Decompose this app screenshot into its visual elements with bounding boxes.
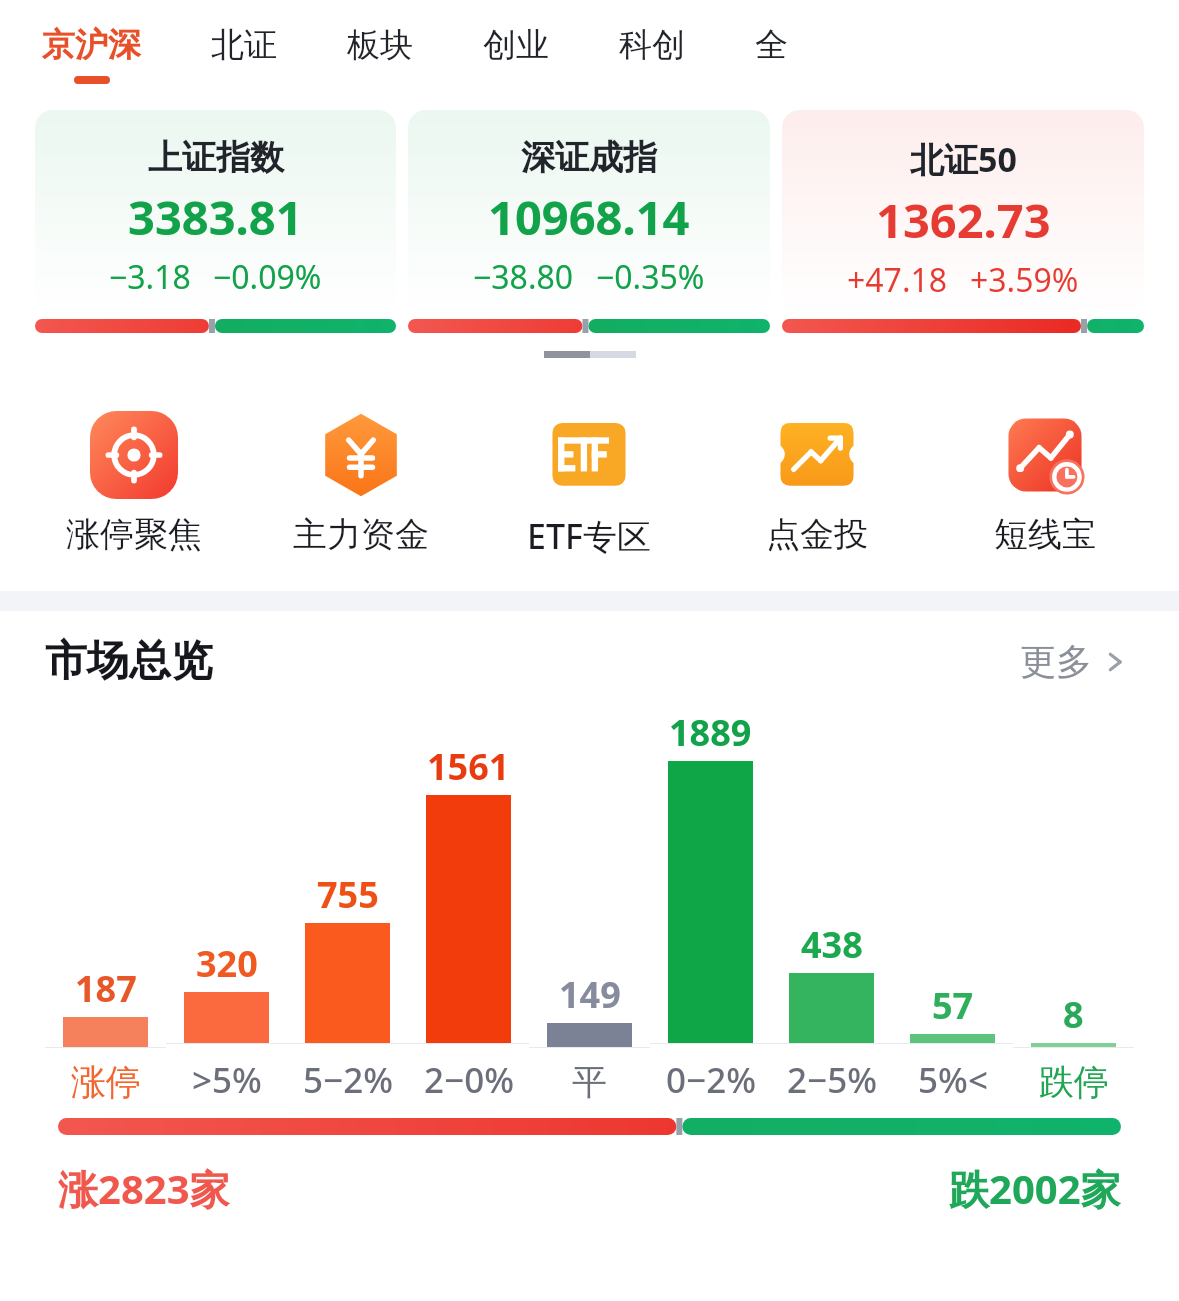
- button[interactable]: 板块: [343, 0, 417, 76]
- button[interactable]: 创业: [479, 0, 553, 76]
- staticText: 149: [559, 970, 621, 1019]
- staticText: >5%: [192, 1056, 262, 1104]
- button[interactable]: 京沪深: [38, 0, 145, 84]
- button[interactable]: 科创: [615, 0, 689, 76]
- button[interactable]: 全: [751, 0, 792, 76]
- staticText: 更多: [1020, 639, 1092, 684]
- button[interactable]: 短线宝: [931, 411, 1159, 556]
- staticText: −0.09%: [213, 255, 322, 299]
- button[interactable]: 深证成指: [408, 110, 770, 345]
- staticText: 市场总览: [45, 635, 213, 688]
- staticText: +3.59%: [970, 258, 1079, 302]
- staticText: 1889: [669, 708, 752, 757]
- staticText: 上证指数: [148, 136, 284, 179]
- button[interactable]: 点金投: [703, 411, 931, 556]
- button[interactable]: 涨停聚焦: [20, 411, 247, 556]
- button[interactable]: ETF专区: [475, 411, 703, 559]
- staticText: 创业: [483, 24, 549, 66]
- staticText: 0−2%: [666, 1056, 756, 1104]
- staticText: 1561: [427, 742, 510, 791]
- staticText: 5%<: [918, 1056, 988, 1104]
- button[interactable]: 北证: [207, 0, 281, 76]
- staticText: 跌2002家: [949, 1161, 1121, 1216]
- staticText: 涨停聚焦: [66, 513, 202, 556]
- staticText: 755: [317, 870, 379, 919]
- staticText: 全: [755, 24, 788, 66]
- staticText: 京沪深: [42, 24, 141, 66]
- staticText: 5−2%: [303, 1056, 393, 1104]
- staticText: +47.18: [847, 258, 948, 302]
- staticText: 板块: [347, 24, 413, 66]
- staticText: −0.35%: [596, 255, 705, 299]
- staticText: 1362.73: [876, 188, 1051, 252]
- staticText: 科创: [619, 24, 685, 66]
- button[interactable]: 上证指数: [35, 110, 396, 345]
- button[interactable]: 主力资金: [247, 411, 475, 556]
- staticText: 北证: [211, 24, 277, 66]
- staticText: 北证50: [910, 136, 1017, 182]
- staticText: 3383.81: [128, 185, 303, 249]
- staticText: ETF专区: [527, 513, 651, 559]
- staticText: −3.18: [109, 255, 191, 299]
- staticText: 8: [1063, 990, 1084, 1039]
- staticText: 320: [196, 939, 258, 988]
- staticText: 2−0%: [424, 1056, 514, 1104]
- staticText: 57: [932, 981, 974, 1030]
- staticText: 点金投: [766, 513, 868, 556]
- staticText: 2−5%: [787, 1056, 877, 1104]
- staticText: 187: [75, 964, 137, 1013]
- button[interactable]: 北证50: [782, 110, 1144, 345]
- staticText: 平: [572, 1060, 607, 1104]
- button[interactable]: 更多: [1014, 633, 1134, 690]
- staticText: 10968.14: [488, 185, 690, 249]
- staticText: 主力资金: [293, 513, 429, 556]
- staticText: 跌停: [1039, 1060, 1109, 1104]
- staticText: 438: [801, 920, 863, 969]
- staticText: 涨2823家: [58, 1161, 230, 1216]
- staticText: 短线宝: [994, 513, 1096, 556]
- staticText: −38.80: [473, 255, 574, 299]
- staticText: 涨停: [71, 1060, 141, 1104]
- staticText: 深证成指: [521, 136, 657, 179]
